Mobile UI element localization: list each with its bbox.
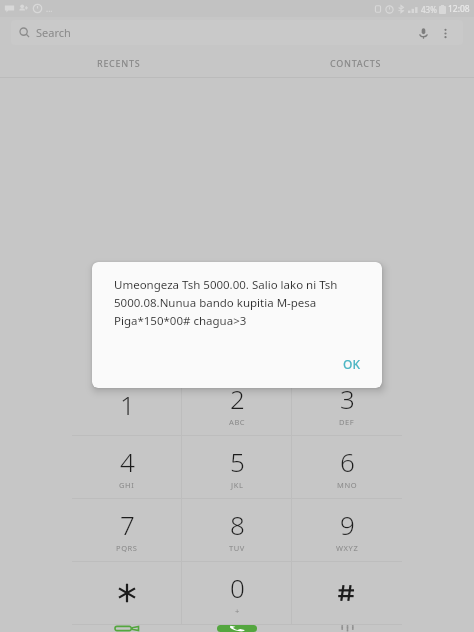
button[interactable] (292, 562, 402, 624)
button[interactable]: 8 (182, 499, 292, 561)
staticText: MNO (337, 480, 358, 490)
button[interactable]: 5 (182, 436, 292, 498)
button[interactable]: 6 (292, 436, 402, 498)
button[interactable]: Hide keypad (292, 625, 402, 632)
staticText: Search (36, 25, 71, 40)
staticText: RECENTS (97, 57, 141, 69)
button[interactable]: Video call (72, 625, 182, 632)
button[interactable]: 4 (72, 436, 182, 498)
button[interactable]: 9 (292, 499, 402, 561)
staticText: DEF (339, 417, 355, 427)
staticText: 12:08 (448, 3, 470, 15)
staticText: GHI (119, 480, 135, 490)
button[interactable]: 2 (182, 373, 292, 435)
button[interactable]: Search (11, 20, 463, 45)
button[interactable]: RECENTS (0, 48, 237, 77)
button[interactable]: 3 (292, 373, 402, 435)
staticText: ... (46, 3, 53, 14)
staticText: 9 (340, 507, 355, 542)
button[interactable] (72, 562, 182, 624)
button[interactable]: 1 (72, 373, 182, 435)
staticText: CONTACTS (330, 57, 382, 69)
staticText: PQRS (116, 543, 138, 553)
staticText: TUV (229, 543, 245, 553)
staticText: 6 (340, 444, 355, 479)
button[interactable]: CONTACTS (237, 48, 474, 77)
staticText: + (235, 606, 240, 616)
staticText: WXYZ (336, 543, 359, 553)
staticText: 0 (230, 570, 245, 605)
button[interactable]: 0 (182, 562, 292, 624)
button[interactable]: 7 (72, 499, 182, 561)
button[interactable]: Call (182, 625, 292, 632)
staticText: 2 (230, 381, 245, 416)
staticText: ABC (229, 417, 246, 427)
staticText: 4 (120, 444, 135, 479)
button[interactable]: OK (321, 350, 382, 378)
button[interactable]: More options (435, 23, 455, 43)
staticText: 43% (421, 4, 437, 15)
staticText: JKL (231, 480, 244, 490)
staticText: OK (343, 356, 360, 372)
staticText: 8 (230, 507, 245, 542)
staticText: 5 (230, 444, 245, 479)
staticText: 1 (120, 387, 135, 422)
button[interactable]: Voice search (413, 23, 433, 43)
staticText: 7 (120, 507, 135, 542)
staticText: 3 (340, 381, 355, 416)
staticText: Umeongeza Tsh 5000.00. Salio lako ni Tsh… (114, 277, 360, 328)
